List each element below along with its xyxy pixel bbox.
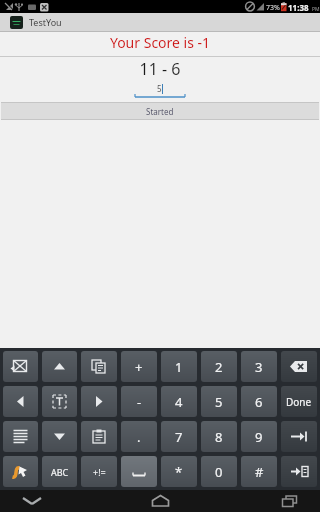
staticText: # (255, 463, 264, 481)
button[interactable] (42, 421, 77, 452)
button[interactable] (42, 386, 77, 417)
staticText: 5 (157, 83, 162, 94)
button[interactable]: 9 (241, 421, 277, 452)
staticText: +!= (93, 466, 106, 478)
staticText: 6 (255, 393, 263, 411)
staticText: + (135, 358, 143, 376)
button[interactable]: ABC (42, 456, 77, 487)
button[interactable]: 4 (161, 386, 197, 417)
button[interactable]: 0 (201, 456, 237, 487)
staticText: 1 (175, 358, 183, 376)
staticText: 9 (255, 428, 263, 446)
button[interactable] (81, 386, 117, 417)
button[interactable]: . (121, 421, 157, 452)
button[interactable]: Done (281, 386, 317, 417)
button[interactable]: 1 (161, 351, 197, 382)
button[interactable]: 3 (241, 351, 277, 382)
button[interactable]: 8 (201, 421, 237, 452)
button[interactable] (42, 351, 77, 382)
staticText: 4 (175, 393, 183, 411)
button[interactable]: 5 (201, 386, 237, 417)
button[interactable]: 6 (241, 386, 277, 417)
staticText: TestYou (29, 16, 62, 28)
staticText: 8 (215, 428, 223, 446)
button[interactable]: + (121, 351, 157, 382)
button[interactable]: 2 (201, 351, 237, 382)
staticText: . (137, 428, 141, 446)
staticText: 0 (215, 463, 223, 481)
button[interactable]: +!= (81, 456, 117, 487)
button[interactable] (3, 386, 38, 417)
button[interactable]: * (161, 456, 197, 487)
staticText: 3 (255, 358, 263, 376)
button[interactable]: 7 (161, 421, 197, 452)
staticText: 2 (215, 358, 223, 376)
button[interactable]: Started (1, 102, 319, 120)
button[interactable] (281, 421, 317, 452)
button[interactable] (121, 456, 157, 487)
button[interactable] (81, 421, 117, 452)
button[interactable]: - (121, 386, 157, 417)
staticText: 11:38 (288, 2, 309, 13)
staticText: Done (286, 395, 312, 409)
button[interactable] (281, 351, 317, 382)
staticText: - (137, 393, 142, 411)
staticText: Started (146, 106, 174, 117)
button[interactable] (281, 456, 317, 487)
staticText: ABC (51, 466, 69, 478)
button[interactable] (3, 456, 38, 487)
staticText: 5 (215, 393, 223, 411)
button[interactable]: # (241, 456, 277, 487)
staticText: 11 - 6 (0, 58, 320, 80)
staticText: * (175, 463, 183, 481)
button[interactable] (3, 351, 38, 382)
button[interactable] (0, 490, 320, 512)
button[interactable] (81, 351, 117, 382)
button[interactable] (3, 421, 38, 452)
staticText: 73% (266, 3, 280, 13)
staticText: PM (312, 6, 320, 13)
staticText: Your Score is -1 (0, 33, 320, 52)
staticText: 7 (175, 428, 183, 446)
